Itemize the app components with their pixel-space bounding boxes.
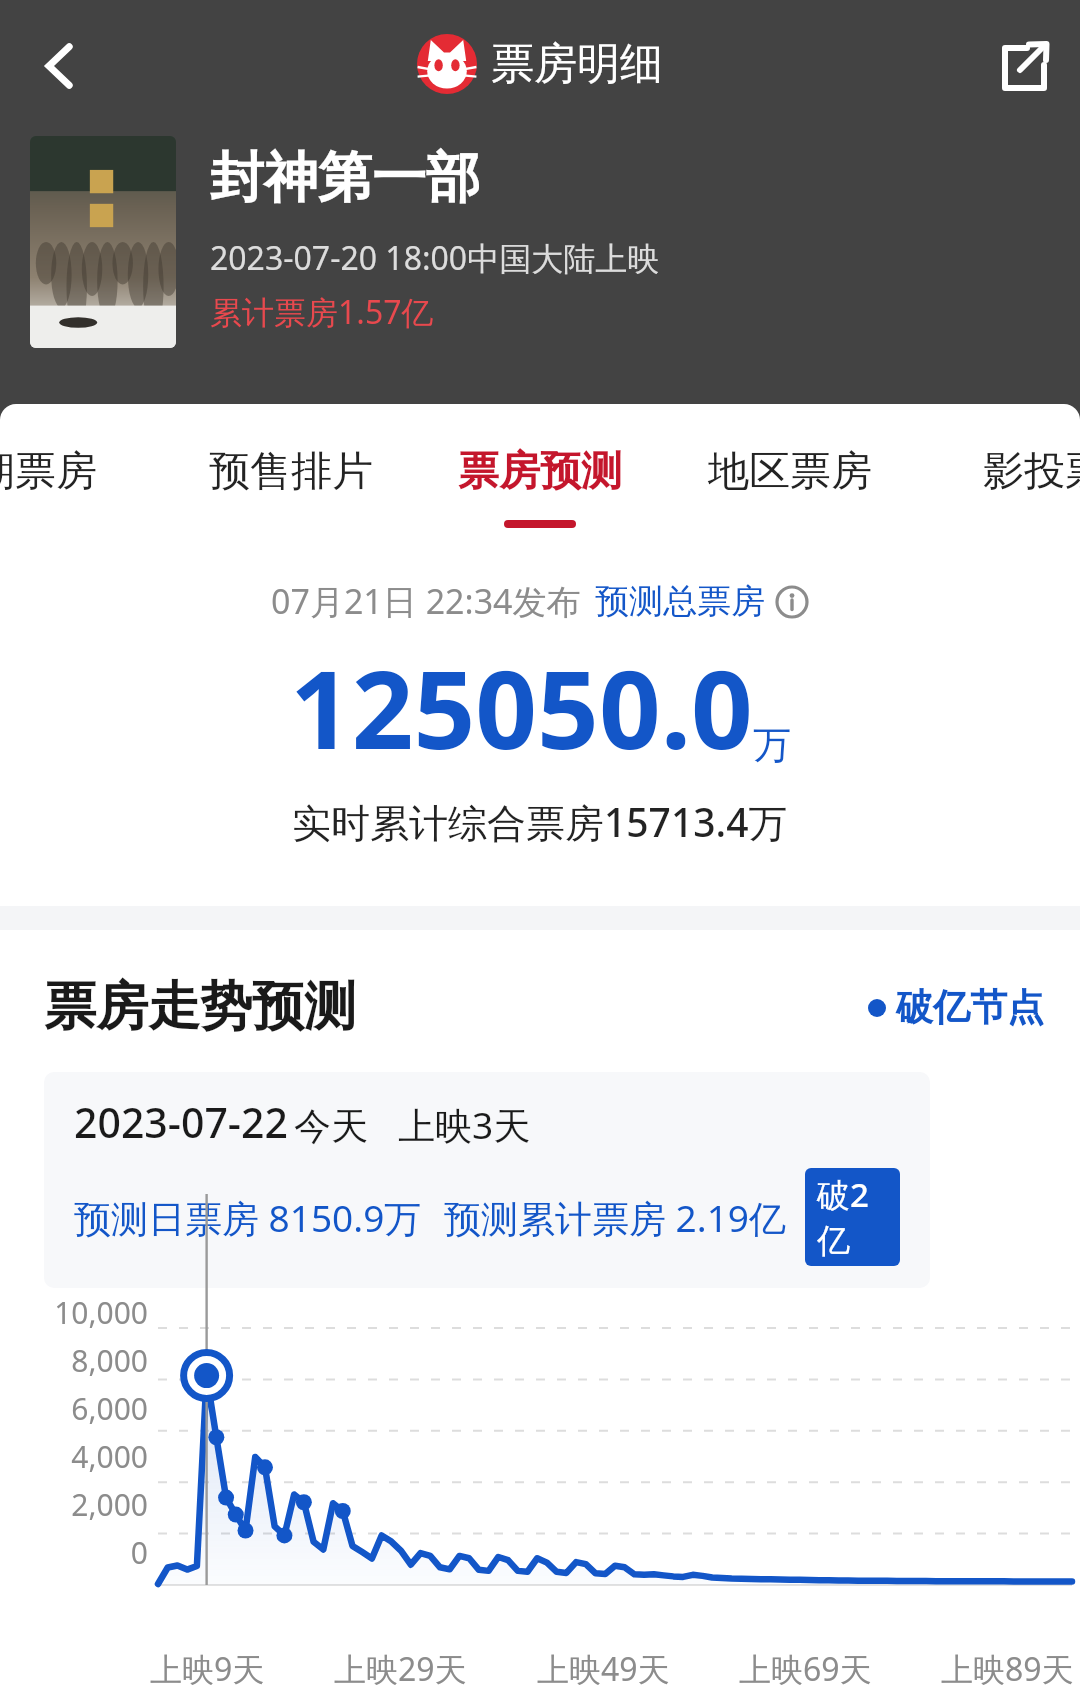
staticText: 10,000 [44, 1292, 148, 1333]
button[interactable]: 期票房 [0, 446, 97, 498]
staticText: 预测日票房 8150.9万 [74, 1192, 422, 1243]
staticText: 累计票房1.57亿 [210, 290, 434, 334]
button[interactable]: 预售排片 [209, 446, 373, 498]
staticText: 封神第一部 [210, 144, 480, 212]
button[interactable]: 破亿节点 [868, 984, 1044, 1031]
staticText: 125050.0 [290, 634, 753, 781]
staticText: 0 [44, 1532, 148, 1573]
button[interactable]: 地区票房 [708, 446, 872, 498]
staticText: 预售排片 [209, 446, 373, 498]
staticText: 今天 [294, 1103, 368, 1150]
staticText: 07月21日 22:34发布 [271, 578, 581, 624]
button[interactable]: 影投票 [983, 446, 1080, 498]
button[interactable]: Back [10, 16, 110, 116]
staticText: 地区票房 [708, 446, 872, 498]
staticText: 票房明细 [491, 37, 663, 91]
staticText: 预测总票房 [595, 580, 765, 623]
staticText: 上映3天 [398, 1099, 531, 1150]
staticText: 万 [753, 721, 791, 769]
staticText: 上映89天 [941, 1647, 1074, 1691]
staticText: 上映9天 [150, 1647, 265, 1691]
staticText: 2023-07-20 18:00中国大陆上映 [210, 236, 660, 280]
staticText: 影投票 [983, 446, 1080, 498]
staticText: 票房预测 [458, 446, 622, 498]
staticText: 8,000 [44, 1340, 148, 1381]
staticText: 上映29天 [334, 1647, 467, 1691]
staticText: 4,000 [44, 1436, 148, 1477]
staticText: 票房走势预测 [44, 974, 356, 1040]
button[interactable]: 票房预测 [458, 446, 622, 528]
staticText: 期票房 [0, 446, 97, 498]
button[interactable]: 2023-07-22 [44, 1072, 930, 1288]
button[interactable]: Share [972, 16, 1072, 116]
staticText: 实时累计综合票房15713.4万 [292, 795, 788, 848]
staticText: 2023-07-22 [74, 1094, 288, 1150]
staticText: 预测累计票房 2.19亿 [444, 1192, 787, 1243]
staticText: 上映69天 [739, 1647, 872, 1691]
staticText: 6,000 [44, 1388, 148, 1429]
staticText: 破亿节点 [896, 984, 1044, 1031]
staticText: 2,000 [44, 1484, 148, 1525]
button[interactable]: 预测总票房 [595, 580, 809, 623]
other: Info [775, 585, 809, 619]
staticText: 破2亿 [817, 1172, 888, 1262]
staticText: 上映49天 [537, 1647, 670, 1691]
